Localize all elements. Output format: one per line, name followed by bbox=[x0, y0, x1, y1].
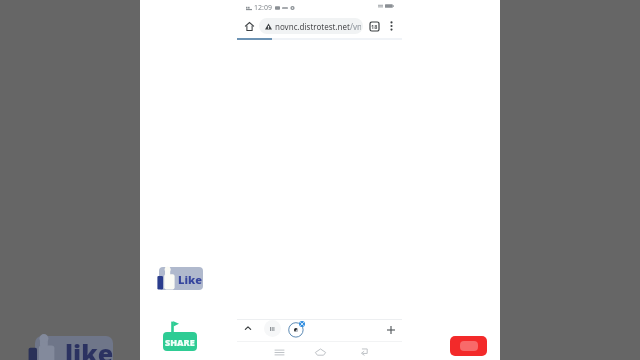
button[interactable]: Close notification bbox=[288, 320, 306, 338]
button[interactable]: More options bbox=[384, 19, 398, 33]
button[interactable]: Back bbox=[356, 344, 372, 360]
button[interactable]: Subscribe bbox=[450, 336, 487, 356]
staticText: 12:09 bbox=[254, 3, 272, 13]
staticText: Like bbox=[178, 272, 203, 287]
button[interactable]: novnc.distrotest.net/vnc.html bbox=[259, 18, 363, 34]
staticText: novnc.distrotest.net/vnc.html bbox=[275, 21, 361, 32]
staticText: like bbox=[65, 336, 114, 360]
button[interactable]: Tabs bbox=[367, 19, 381, 33]
button[interactable]: Share bbox=[163, 332, 197, 351]
button[interactable]: Keyboard bbox=[264, 320, 281, 337]
button[interactable]: Home bbox=[312, 344, 328, 360]
button[interactable]: Like bbox=[159, 267, 203, 290]
button[interactable]: Home bbox=[242, 19, 257, 34]
button[interactable]: New tab bbox=[384, 323, 398, 337]
staticText: 18 bbox=[371, 23, 378, 30]
staticText: SHARE bbox=[165, 336, 195, 348]
button[interactable]: Expand toolbar bbox=[241, 321, 255, 335]
button[interactable]: Recent apps bbox=[271, 344, 287, 360]
